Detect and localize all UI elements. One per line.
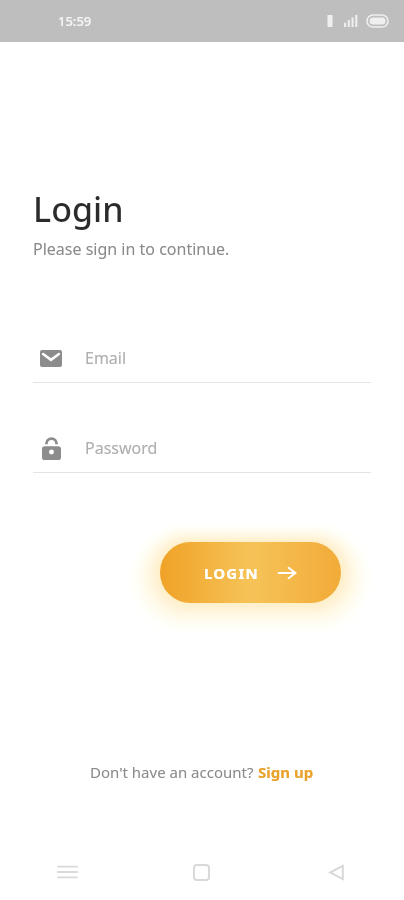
staticText: Password — [85, 437, 158, 459]
button[interactable]: LOGIN — [160, 542, 341, 603]
staticText: Login — [33, 186, 124, 232]
button[interactable]: Back — [269, 844, 404, 900]
button[interactable]: Password — [33, 426, 371, 473]
staticText: Please sign in to continue. — [33, 238, 230, 260]
staticText: Don't have an account? — [90, 762, 258, 782]
staticText: LOGIN — [204, 563, 259, 583]
button[interactable]: Home — [134, 844, 269, 900]
button[interactable]: Sign up — [258, 762, 314, 782]
staticText: Sign up — [258, 762, 314, 782]
button[interactable]: Recent apps — [0, 844, 134, 900]
button[interactable]: Email — [33, 336, 371, 383]
staticText: 15:59 — [58, 12, 92, 30]
staticText: Email — [85, 347, 127, 369]
